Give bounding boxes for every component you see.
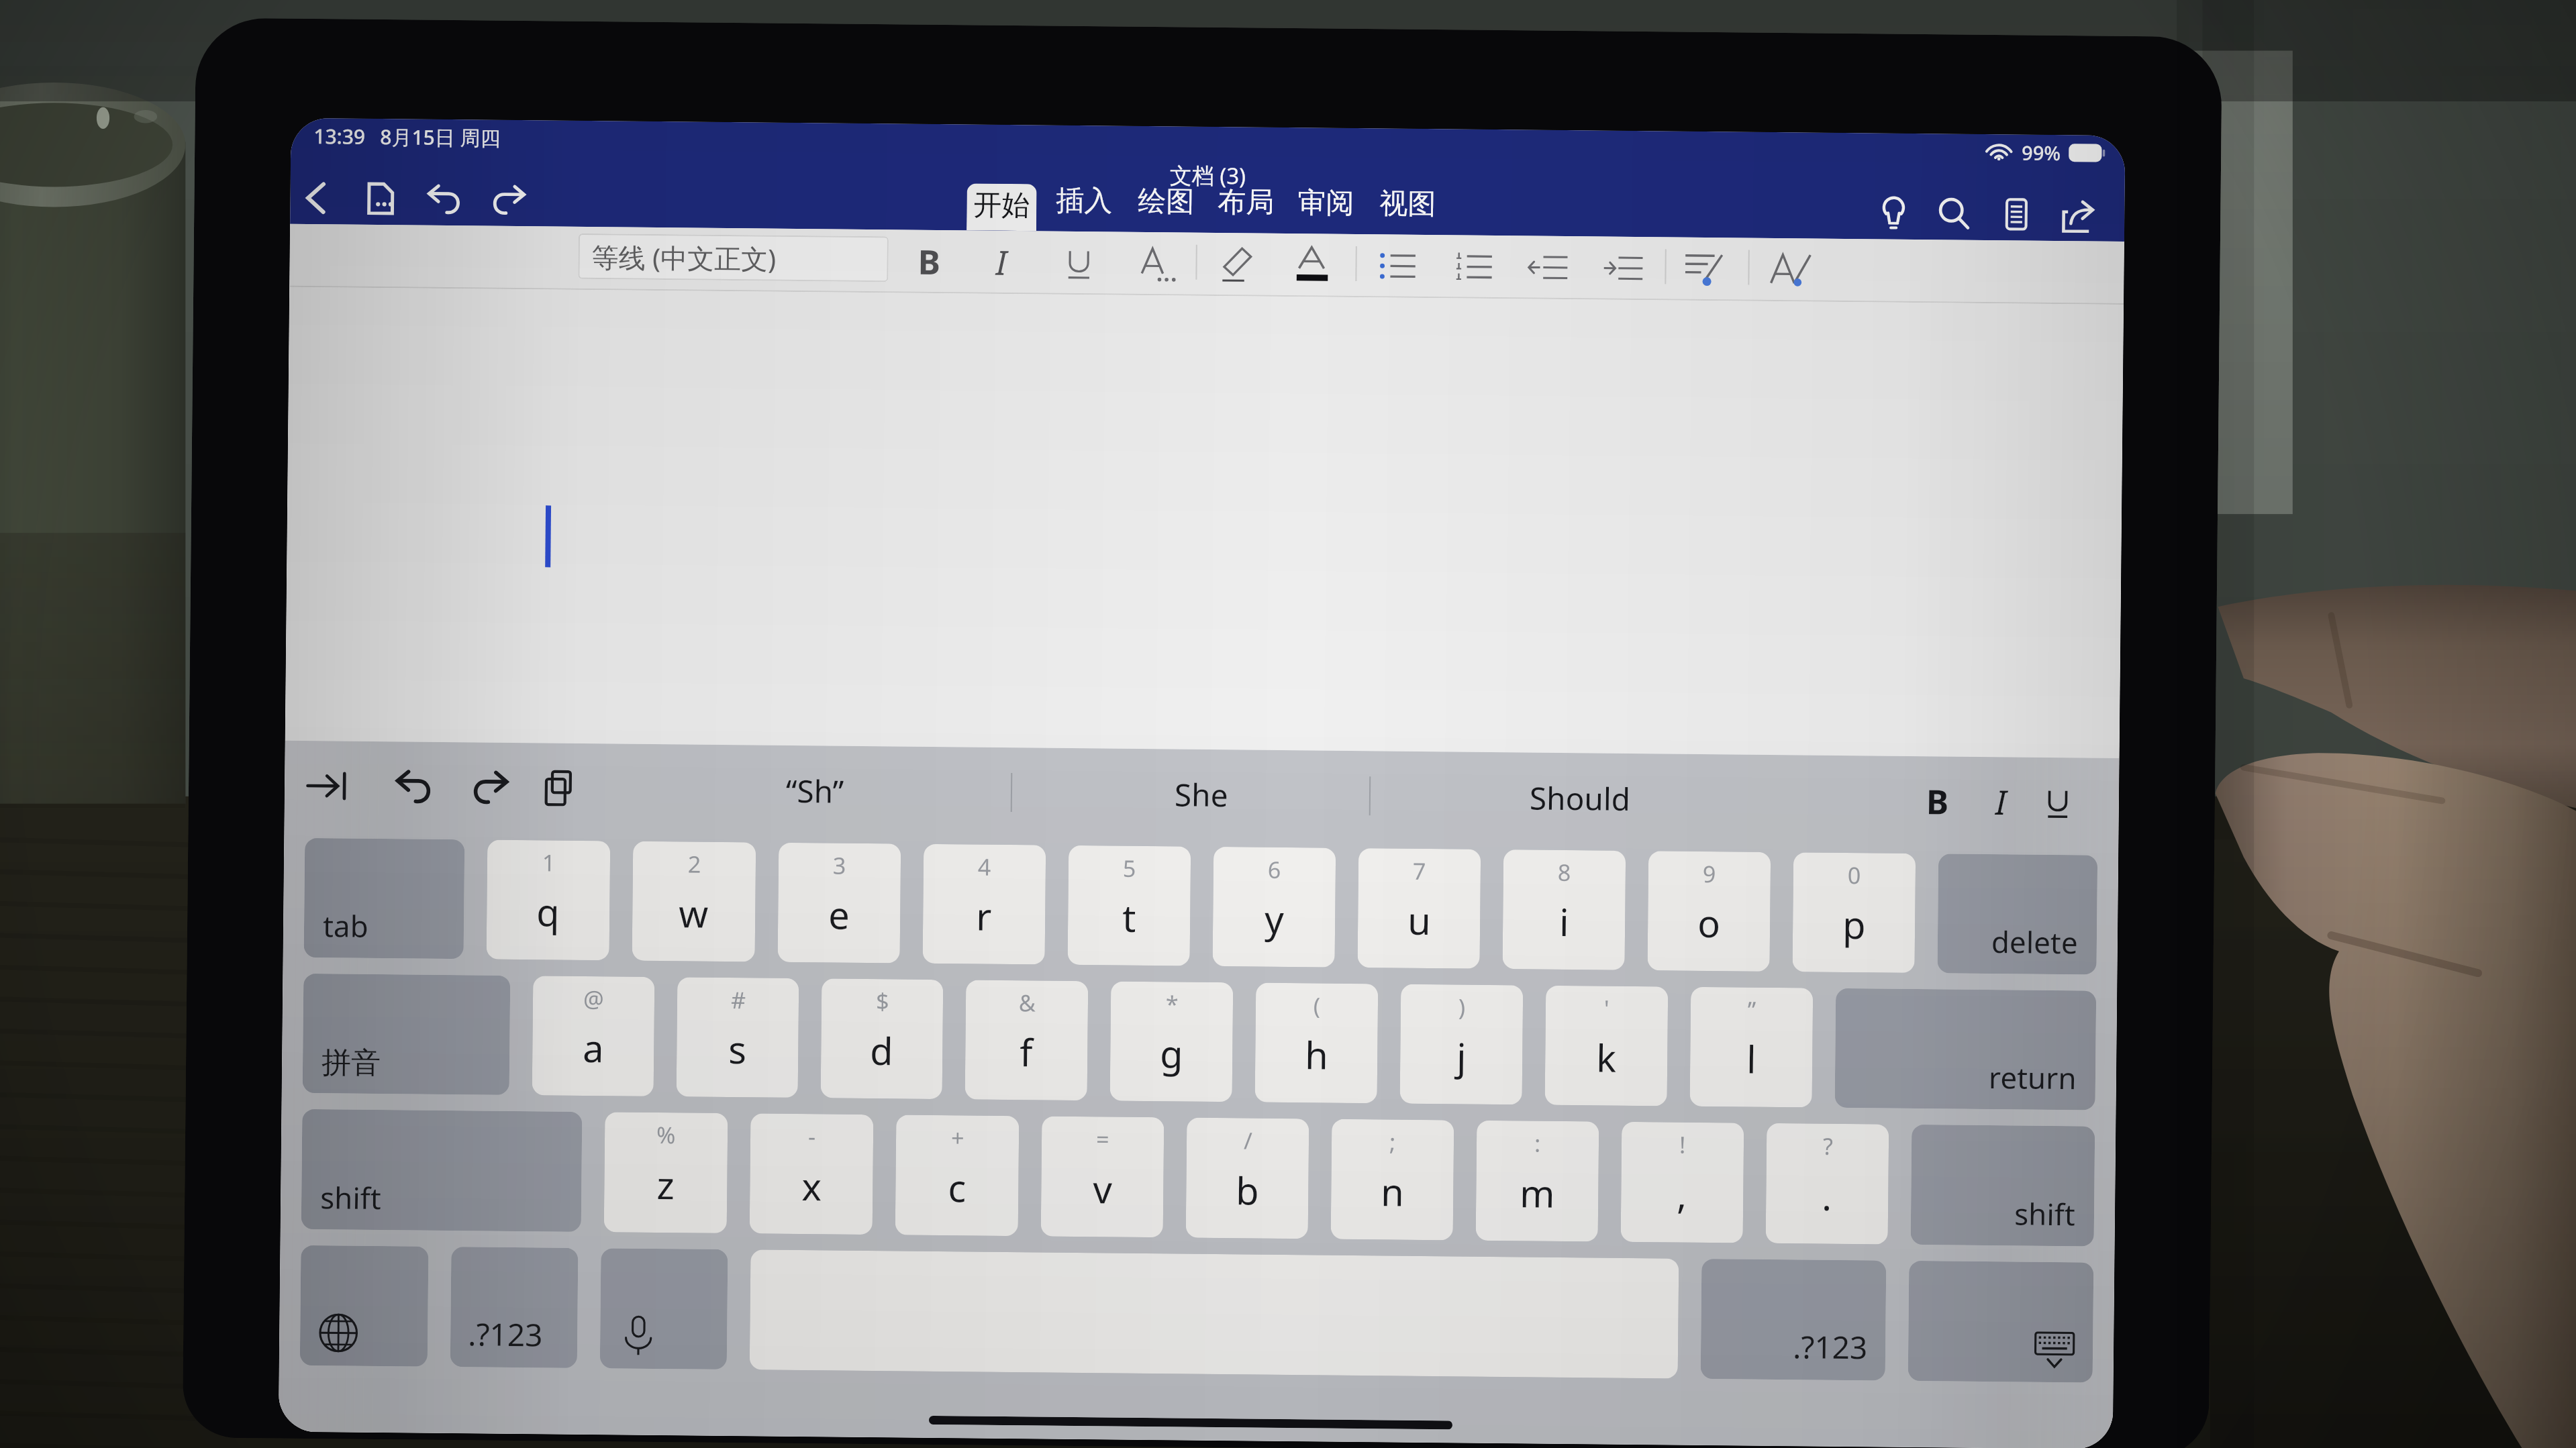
staticText: 2: [688, 848, 701, 879]
button[interactable]: 审阅: [1291, 181, 1361, 234]
button[interactable]: Space: [1545, 985, 1668, 1106]
staticText: ): [1458, 991, 1466, 1022]
button[interactable]: 绘图: [1131, 180, 1201, 233]
button[interactable]: Space: [1331, 1119, 1454, 1240]
staticText: w: [678, 887, 709, 939]
button[interactable]: File options: [350, 172, 410, 225]
staticText: She: [1174, 773, 1228, 816]
button[interactable]: Tell me: [1864, 187, 1923, 240]
staticText: s: [728, 1023, 747, 1074]
button[interactable]: tab: [304, 838, 465, 959]
staticText: 5: [1123, 853, 1136, 884]
button[interactable]: Undo: [382, 743, 447, 831]
staticText: +: [951, 1122, 965, 1153]
button[interactable]: 拼音: [303, 974, 510, 1095]
button[interactable]: Bullets: [1368, 234, 1429, 298]
button[interactable]: Space: [676, 977, 799, 1098]
staticText: k: [1596, 1032, 1617, 1083]
button[interactable]: Redo: [457, 744, 523, 831]
button[interactable]: 等线 (中文正文): [578, 233, 889, 282]
staticText: q: [536, 886, 560, 937]
button[interactable]: Space: [778, 843, 901, 963]
button[interactable]: Space: [532, 976, 655, 1096]
button[interactable]: Text highlight: [1208, 233, 1269, 296]
button[interactable]: Font colour: [1283, 233, 1344, 297]
button[interactable]: Share: [2049, 188, 2109, 241]
button[interactable]: shift: [1911, 1125, 2095, 1246]
button[interactable]: Space: [1502, 850, 1626, 970]
button[interactable]: Space: [750, 1113, 873, 1235]
button[interactable]: Space: [923, 844, 1046, 965]
button[interactable]: Search: [1924, 187, 1984, 240]
button[interactable]: Space: [1255, 983, 1378, 1103]
button[interactable]: B: [1910, 757, 1965, 845]
button[interactable]: Space: [1621, 1122, 1744, 1243]
staticText: g: [1160, 1027, 1184, 1079]
button[interactable]: Space: [1110, 981, 1233, 1102]
button[interactable]: shift: [301, 1109, 582, 1232]
staticText: 9: [1703, 858, 1716, 889]
button[interactable]: 插入: [1049, 179, 1119, 232]
button[interactable]: Space: [1792, 852, 1916, 973]
button[interactable]: Space: [895, 1115, 1019, 1236]
staticText: t: [1122, 891, 1137, 943]
button[interactable]: Redo: [479, 173, 538, 226]
button[interactable]: Space: [1400, 984, 1523, 1105]
button[interactable]: Increase indent: [1593, 236, 1654, 300]
button[interactable]: Space: [1690, 987, 1813, 1107]
button[interactable]: Space: [632, 841, 756, 962]
button[interactable]: Clear formatting: [1761, 238, 1822, 302]
button[interactable]: Space: [1041, 1116, 1164, 1237]
button[interactable]: Decrease indent: [1518, 236, 1579, 299]
button[interactable]: Space: [1212, 847, 1336, 967]
button[interactable]: Change keyboard: [300, 1245, 429, 1367]
button[interactable]: Space: [604, 1112, 728, 1233]
staticText: 布局: [1218, 185, 1274, 221]
button[interactable]: Space: [1186, 1118, 1309, 1239]
button[interactable]: Space: [486, 840, 610, 960]
button[interactable]: Space: [1357, 848, 1481, 969]
button[interactable]: Underline: [2025, 759, 2090, 846]
button[interactable]: Format painter: [1674, 237, 1735, 301]
staticText: ;: [1389, 1126, 1396, 1157]
staticText: 0: [1848, 860, 1861, 891]
staticText: ”: [1748, 994, 1757, 1025]
button[interactable]: Undo: [415, 173, 474, 226]
button[interactable]: Space: [1647, 851, 1771, 972]
button[interactable]: Read mode: [1987, 188, 2046, 241]
button[interactable]: Space: [750, 1250, 1679, 1379]
button[interactable]: 开始: [967, 183, 1037, 231]
button[interactable]: I: [1973, 758, 2028, 846]
button[interactable]: Should: [1465, 753, 1694, 843]
button[interactable]: 布局: [1211, 180, 1281, 233]
button[interactable]: She: [1087, 750, 1316, 839]
button[interactable]: “Sh”: [700, 746, 929, 835]
staticText: m: [1519, 1167, 1556, 1218]
button[interactable]: B: [902, 230, 956, 293]
button[interactable]: Space: [821, 979, 943, 1099]
staticText: “Sh”: [786, 769, 845, 812]
staticText: 4: [978, 851, 991, 882]
button[interactable]: Underline: [1048, 231, 1109, 295]
button[interactable]: Dictate: [600, 1248, 728, 1369]
staticText: j: [1456, 1030, 1467, 1081]
button[interactable]: .?123: [1701, 1259, 1886, 1381]
button[interactable]: Font options: [1128, 232, 1189, 296]
button[interactable]: Tab: [294, 742, 359, 830]
staticText: e: [828, 889, 850, 940]
staticText: ?: [1823, 1130, 1833, 1161]
button[interactable]: Paste: [527, 744, 592, 832]
staticText: 7: [1413, 855, 1426, 886]
button[interactable]: Space: [1476, 1120, 1599, 1242]
button[interactable]: Hide keyboard: [1908, 1261, 2094, 1383]
button[interactable]: Back: [290, 172, 346, 224]
button[interactable]: delete: [1937, 854, 2098, 975]
button[interactable]: Space: [1068, 845, 1191, 966]
button[interactable]: I: [974, 230, 1028, 294]
button[interactable]: 视图: [1373, 182, 1443, 235]
button[interactable]: Space: [1766, 1123, 1889, 1244]
button[interactable]: Space: [965, 980, 1088, 1100]
button[interactable]: Numbering: [1444, 235, 1505, 299]
button[interactable]: return: [1835, 988, 2096, 1110]
button[interactable]: .?123: [450, 1247, 578, 1368]
